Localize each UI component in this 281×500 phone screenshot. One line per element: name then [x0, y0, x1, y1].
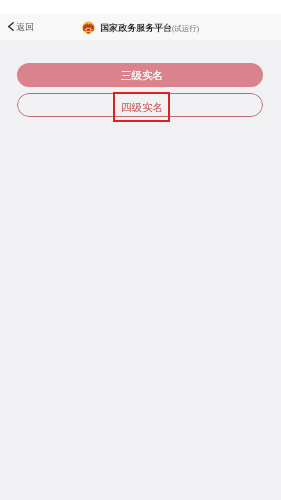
button[interactable]: 四级实名 — [113, 92, 170, 122]
staticText: 三级实名 — [121, 69, 163, 82]
staticText: 返回 — [16, 21, 34, 32]
staticText: 四级实名 — [121, 101, 163, 114]
staticText: 国家政务服务平台 — [100, 22, 172, 33]
button[interactable]: 返回 — [2, 18, 38, 37]
other: 国徽 — [82, 21, 95, 34]
button[interactable]: 三级实名 — [17, 63, 263, 87]
staticText: (试运行) — [172, 23, 199, 33]
button[interactable] — [17, 93, 263, 117]
